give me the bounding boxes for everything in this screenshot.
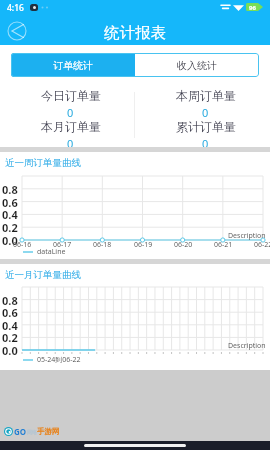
staticText: 0 [67, 136, 74, 151]
staticText: 网络 [27, 429, 37, 435]
staticText: 06-21 [214, 240, 233, 250]
staticText: 订单统计 [53, 59, 93, 72]
staticText: dataLine [37, 247, 66, 257]
button[interactable]: 本月订单量 [3, 119, 138, 151]
staticText: 累计订单量 [176, 119, 236, 134]
button[interactable]: 本周订单量 [138, 88, 270, 120]
staticText: 0.4 [2, 318, 18, 332]
staticText: 06-20 [174, 240, 193, 250]
staticText: 近一周订单量曲线 [5, 157, 81, 169]
button[interactable]: 订单统计 [11, 53, 135, 77]
staticText: 收入统计 [177, 59, 217, 72]
button[interactable]: 收入统计 [135, 53, 259, 77]
staticText: 06-18 [93, 240, 112, 250]
staticText: 0 [202, 105, 209, 120]
staticText: GO [14, 426, 27, 437]
staticText: 0 [202, 136, 209, 151]
staticText: 06-19 [134, 240, 153, 250]
staticText: 0.6 [2, 195, 18, 209]
staticText: 4:16 [7, 2, 24, 14]
staticText: 0.0 [2, 343, 18, 357]
staticText: 本月订单量 [41, 119, 101, 134]
staticText: 今日订单量 [41, 88, 101, 103]
button[interactable]: 今日订单量 [3, 88, 138, 120]
staticText: 96 [249, 4, 256, 12]
staticText: Description [228, 341, 266, 351]
staticText: 0.2 [2, 330, 18, 344]
staticText: 0.8 [2, 293, 18, 307]
staticText: 本周订单量 [176, 88, 236, 103]
staticText: 06-17 [53, 240, 72, 250]
staticText: 0.4 [2, 207, 18, 221]
staticText: 手游网 [37, 427, 60, 436]
button[interactable]: 累计订单量 [138, 119, 270, 151]
staticText: 统计报表 [104, 23, 166, 43]
staticText: 0.0 [2, 233, 18, 247]
staticText: Description [228, 231, 266, 241]
staticText: 0.2 [2, 220, 18, 234]
staticText: 0.8 [2, 182, 18, 196]
staticText: 06-16 [13, 240, 32, 250]
staticText: 0.6 [2, 305, 18, 319]
button[interactable]: Back [5, 19, 29, 43]
staticText: 近一月订单量曲线 [5, 269, 81, 281]
staticText: 0 [67, 105, 74, 120]
staticText: 05-24到06-22 [37, 355, 81, 365]
staticText: 06-22 [254, 240, 270, 250]
